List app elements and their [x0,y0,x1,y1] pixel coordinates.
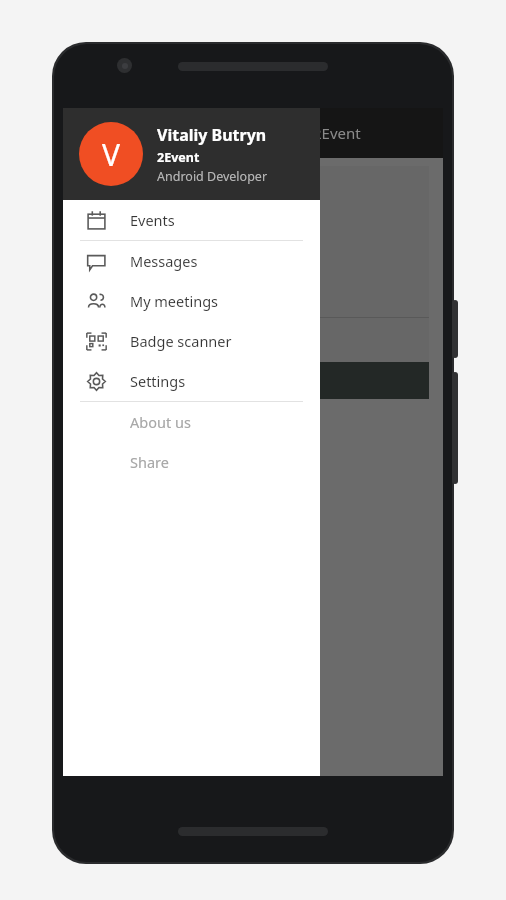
staticText: Android Developer [157,168,268,185]
staticText: Settings [130,371,186,391]
button[interactable]: Badge scanner [63,321,320,361]
staticText: Vitaliy Butryn [157,124,267,146]
button[interactable]: Events [63,200,320,240]
staticText: About us [130,412,191,432]
staticText: V [102,134,120,175]
staticText: Share [130,452,169,472]
button[interactable]: Messages [63,241,320,281]
button[interactable]: My meetings [63,281,320,321]
staticText: 2Event [157,149,200,166]
staticText: Events [130,210,175,230]
staticText: Badge scanner [130,331,232,351]
button[interactable]: Share [63,442,320,482]
staticText: Participants from my city: [85,330,232,346]
button[interactable]: Settings [63,361,320,401]
staticText: GO [85,372,105,390]
staticText: Messages [130,251,198,271]
staticText: My meetings [130,291,219,311]
button[interactable]: About us [63,402,320,442]
staticText: 2Event [313,123,361,143]
staticText: Kotlin conference [85,248,209,267]
